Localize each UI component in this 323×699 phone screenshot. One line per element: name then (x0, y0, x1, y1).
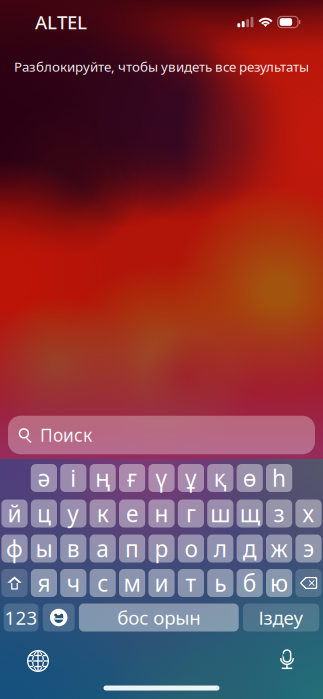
staticText: п (125, 533, 139, 563)
button[interactable]: ө (237, 464, 263, 492)
button[interactable]: з (266, 499, 292, 527)
staticText: ы (35, 533, 52, 563)
button[interactable]: у (60, 499, 86, 527)
button[interactable]: һ (266, 464, 292, 492)
staticText: э (303, 533, 314, 563)
button[interactable]: ь (207, 569, 233, 597)
button[interactable]: э (295, 534, 322, 562)
staticText: й (7, 498, 21, 528)
staticText: м (124, 568, 141, 598)
staticText: ALTEL (35, 10, 87, 34)
button[interactable]: Поиск (8, 416, 315, 454)
staticText: һ (272, 463, 286, 493)
staticText: л (214, 533, 227, 563)
button[interactable]: ц (31, 499, 57, 527)
staticText: о (184, 533, 197, 563)
button[interactable]: ғ (119, 464, 145, 492)
button[interactable]: в (60, 534, 86, 562)
button[interactable]: ю (266, 569, 292, 597)
button[interactable]: е (119, 499, 145, 527)
button[interactable]: р (148, 534, 175, 562)
staticText: г (186, 498, 196, 528)
button[interactable]: я (31, 569, 57, 597)
staticText: ң (95, 463, 110, 493)
button[interactable]: л (207, 534, 233, 562)
staticText: ж (271, 533, 288, 563)
button[interactable]: ұ (178, 464, 204, 492)
staticText: ю (270, 568, 288, 598)
button[interactable]: ж (266, 534, 292, 562)
staticText: Разблокируйте, чтобы увидеть все результ… (14, 58, 309, 75)
button[interactable]: б (237, 569, 263, 597)
staticText: х (302, 498, 314, 528)
staticText: ә (37, 463, 50, 493)
staticText: ү (155, 463, 167, 493)
button[interactable]: г (178, 499, 204, 527)
staticText: ө (243, 463, 257, 493)
button[interactable]: ф (1, 534, 28, 562)
button[interactable]: й (1, 499, 28, 527)
button[interactable]: Shift (1, 569, 28, 597)
staticText: б (243, 568, 257, 598)
button[interactable]: и (148, 569, 175, 597)
staticText: бос орын (117, 605, 200, 630)
staticText: щ (240, 498, 260, 528)
button[interactable]: х (295, 499, 322, 527)
staticText: с (97, 568, 108, 598)
button[interactable]: ә (31, 464, 57, 492)
staticText: н (154, 498, 168, 528)
button[interactable]: і (60, 464, 86, 492)
button[interactable]: 123 (4, 603, 38, 631)
button[interactable]: с (90, 569, 116, 597)
button[interactable]: щ (237, 499, 263, 527)
staticText: т (185, 568, 196, 598)
button[interactable]: а (90, 534, 116, 562)
button[interactable]: Emoji (43, 603, 75, 631)
staticText: Поиск (40, 423, 92, 446)
button[interactable]: ы (31, 534, 57, 562)
staticText: ф (6, 533, 23, 563)
button[interactable]: қ (207, 464, 233, 492)
button[interactable]: Delete (295, 569, 322, 597)
staticText: қ (214, 463, 227, 493)
staticText: і (70, 463, 76, 493)
button[interactable]: ч (60, 569, 86, 597)
staticText: ч (67, 568, 80, 598)
staticText: з (274, 498, 285, 528)
button[interactable]: к (90, 499, 116, 527)
staticText: ь (214, 568, 226, 598)
staticText: ұ (185, 463, 197, 493)
staticText: у (67, 498, 79, 528)
staticText: 123 (5, 605, 38, 630)
button[interactable]: ң (90, 464, 116, 492)
button[interactable]: Dictation (279, 648, 295, 673)
staticText: а (96, 533, 109, 563)
button[interactable]: н (148, 499, 175, 527)
staticText: в (67, 533, 80, 563)
staticText: и (154, 568, 168, 598)
staticText: р (154, 533, 168, 563)
button[interactable]: т (178, 569, 204, 597)
button[interactable]: ш (207, 499, 233, 527)
staticText: д (243, 533, 257, 563)
staticText: я (37, 568, 50, 598)
button[interactable]: Next keyboard (27, 650, 49, 672)
button[interactable]: Іздеу (243, 603, 319, 631)
staticText: е (126, 498, 138, 528)
button[interactable]: д (237, 534, 263, 562)
button[interactable]: ү (148, 464, 175, 492)
staticText: к (97, 498, 109, 528)
button[interactable]: о (178, 534, 204, 562)
button[interactable]: м (119, 569, 145, 597)
staticText: ғ (127, 463, 137, 493)
staticText: ш (210, 498, 230, 528)
staticText: ц (37, 498, 51, 528)
staticText: Іздеу (259, 605, 304, 630)
button[interactable]: п (119, 534, 145, 562)
button[interactable]: бос орын (79, 603, 239, 631)
